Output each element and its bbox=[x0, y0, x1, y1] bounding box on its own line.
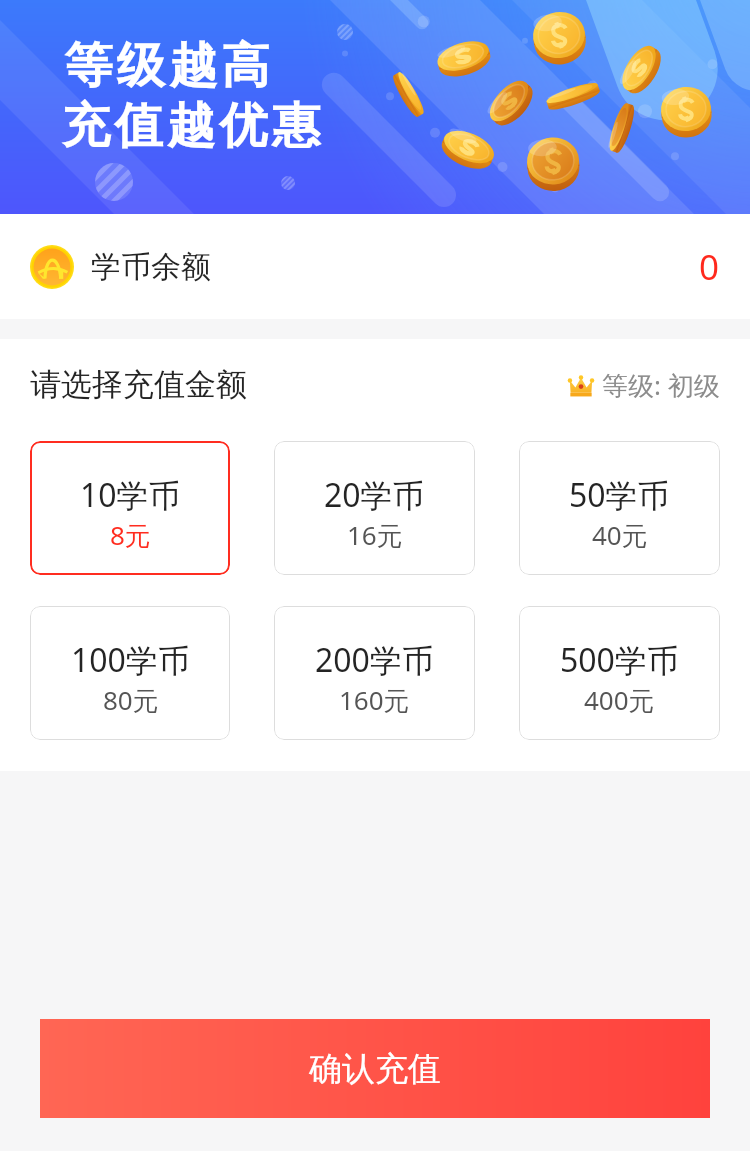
staticText: 0 bbox=[699, 243, 720, 291]
staticText: 40元 bbox=[592, 517, 648, 553]
staticText: 8元 bbox=[110, 517, 151, 553]
staticText: 400元 bbox=[584, 682, 655, 718]
button[interactable]: 500学币 bbox=[519, 606, 720, 740]
staticText: 16元 bbox=[347, 517, 403, 553]
staticText: 100学币 bbox=[71, 638, 190, 682]
button[interactable]: 100学币 bbox=[30, 606, 230, 740]
staticText: 160元 bbox=[339, 682, 410, 718]
button[interactable]: 50学币 bbox=[519, 441, 720, 575]
staticText: 10学币 bbox=[80, 473, 181, 517]
staticText: 确认充值 bbox=[309, 1048, 441, 1090]
staticText: 等级越高 bbox=[62, 36, 272, 96]
staticText: 500学币 bbox=[560, 638, 679, 682]
staticText: 20学币 bbox=[324, 473, 425, 517]
staticText: 充值越优惠 bbox=[62, 96, 325, 156]
staticText: 学币余额 bbox=[91, 248, 211, 286]
staticText: 50学币 bbox=[569, 473, 670, 517]
button[interactable]: 20学币 bbox=[274, 441, 475, 575]
staticText: 80元 bbox=[103, 682, 159, 718]
button[interactable]: 确认充值 bbox=[40, 1019, 710, 1118]
staticText: 200学币 bbox=[315, 638, 434, 682]
button[interactable]: 10学币 bbox=[30, 441, 230, 575]
staticText: 请选择充值金额 bbox=[30, 365, 247, 404]
button[interactable]: 学币余额 bbox=[0, 214, 750, 319]
staticText: 等级: 初级 bbox=[602, 367, 720, 403]
button[interactable]: 200学币 bbox=[274, 606, 475, 740]
